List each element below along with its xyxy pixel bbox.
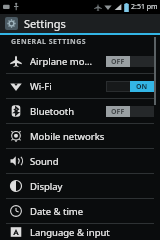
button[interactable]: Language & input <box>0 224 160 240</box>
button[interactable]: Settings <box>0 14 160 33</box>
button[interactable]: Toggle off <box>106 105 154 118</box>
staticText: Language & input <box>30 226 110 239</box>
staticText: Bluetooth <box>30 105 75 118</box>
button[interactable]: Display <box>0 174 160 198</box>
button[interactable]: Airplane mo... <box>0 49 160 73</box>
staticText: GENERAL SETTINGS <box>11 37 87 47</box>
staticText: 2:51 pm <box>131 2 158 12</box>
button[interactable]: Sound <box>0 149 160 173</box>
staticText: Sound <box>30 155 59 168</box>
staticText: OFF <box>111 57 125 67</box>
staticText: Mobile networks <box>30 130 105 143</box>
button[interactable]: Bluetooth <box>0 99 160 123</box>
staticText: Date & time <box>30 205 84 218</box>
button[interactable]: Toggle on <box>106 80 154 93</box>
staticText: Settings <box>24 16 66 31</box>
staticText: Display <box>30 180 63 193</box>
button[interactable]: Wi-Fi <box>0 74 160 98</box>
button[interactable]: Toggle off <box>106 55 154 68</box>
staticText: OFF <box>111 107 125 117</box>
staticText: Airplane mo... <box>30 55 93 68</box>
button[interactable]: Mobile networks <box>0 124 160 148</box>
staticText: ON <box>136 82 148 92</box>
button[interactable]: Date & time <box>0 199 160 223</box>
staticText: Wi-Fi <box>30 80 52 93</box>
